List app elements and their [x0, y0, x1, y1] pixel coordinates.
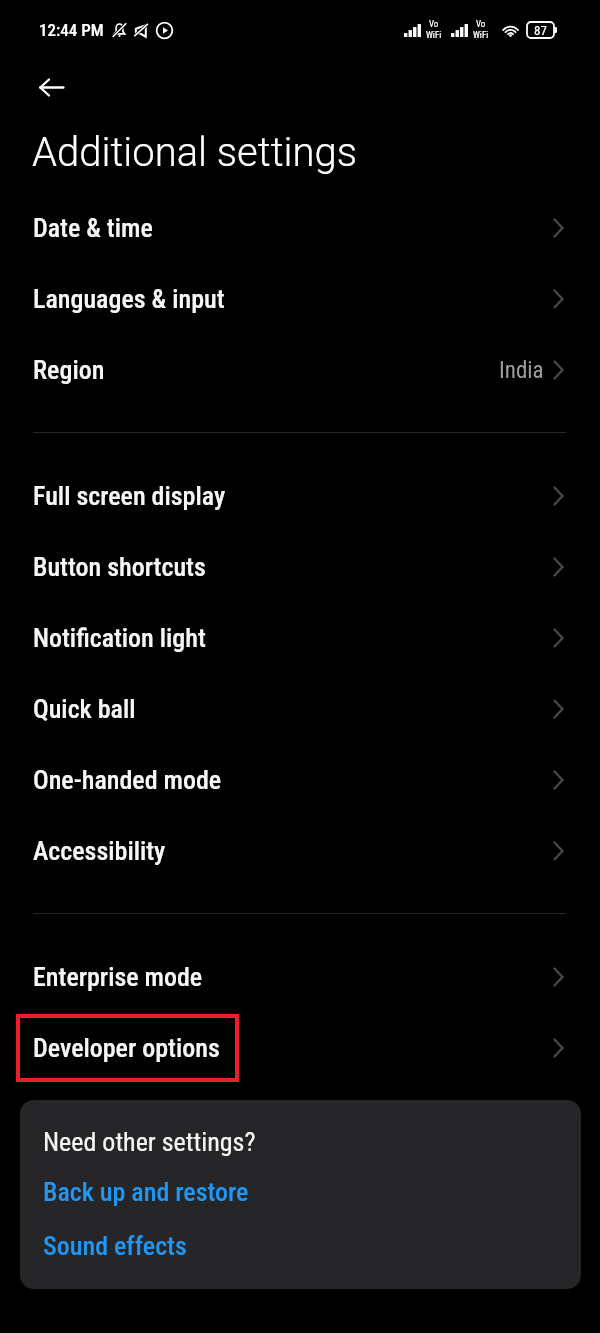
staticText: Vo: [476, 19, 486, 30]
button[interactable]: Back up and restore: [43, 1177, 557, 1207]
button[interactable]: Languages & input: [0, 263, 600, 334]
button[interactable]: Quick ball: [0, 673, 600, 744]
staticText: Vo: [429, 19, 439, 30]
button[interactable]: Button shortcuts: [0, 531, 600, 602]
button[interactable]: Full screen display: [0, 460, 600, 531]
staticText: WiFi: [473, 30, 489, 41]
button[interactable]: Developer options: [0, 1012, 600, 1083]
staticText: Need other settings?: [43, 1127, 256, 1157]
staticText: Back up and restore: [43, 1177, 249, 1207]
button[interactable]: Date & time: [0, 192, 600, 263]
staticText: Quick ball: [33, 694, 136, 724]
staticText: Languages & input: [33, 284, 225, 314]
staticText: Accessibility: [33, 836, 166, 866]
staticText: Region: [33, 355, 105, 385]
staticText: Developer options: [33, 1033, 220, 1063]
staticText: WiFi: [426, 30, 442, 41]
button[interactable]: Enterprise mode: [0, 941, 600, 1012]
staticText: Full screen display: [33, 481, 226, 511]
staticText: India: [499, 357, 544, 384]
staticText: Sound effects: [43, 1231, 187, 1261]
staticText: 12:44 PM: [39, 20, 104, 40]
staticText: Button shortcuts: [33, 552, 206, 582]
button[interactable]: Region: [0, 334, 600, 405]
button[interactable]: Notification light: [0, 602, 600, 673]
button[interactable]: Accessibility: [0, 815, 600, 886]
button[interactable]: One-handed mode: [0, 744, 600, 815]
staticText: One-handed mode: [33, 765, 222, 795]
button[interactable]: Sound effects: [43, 1231, 557, 1261]
staticText: 87: [534, 23, 547, 38]
button[interactable]: Back: [27, 63, 75, 111]
staticText: Date & time: [33, 213, 153, 243]
staticText: Notification light: [33, 623, 206, 653]
staticText: Additional settings: [32, 129, 357, 176]
staticText: Enterprise mode: [33, 962, 203, 992]
